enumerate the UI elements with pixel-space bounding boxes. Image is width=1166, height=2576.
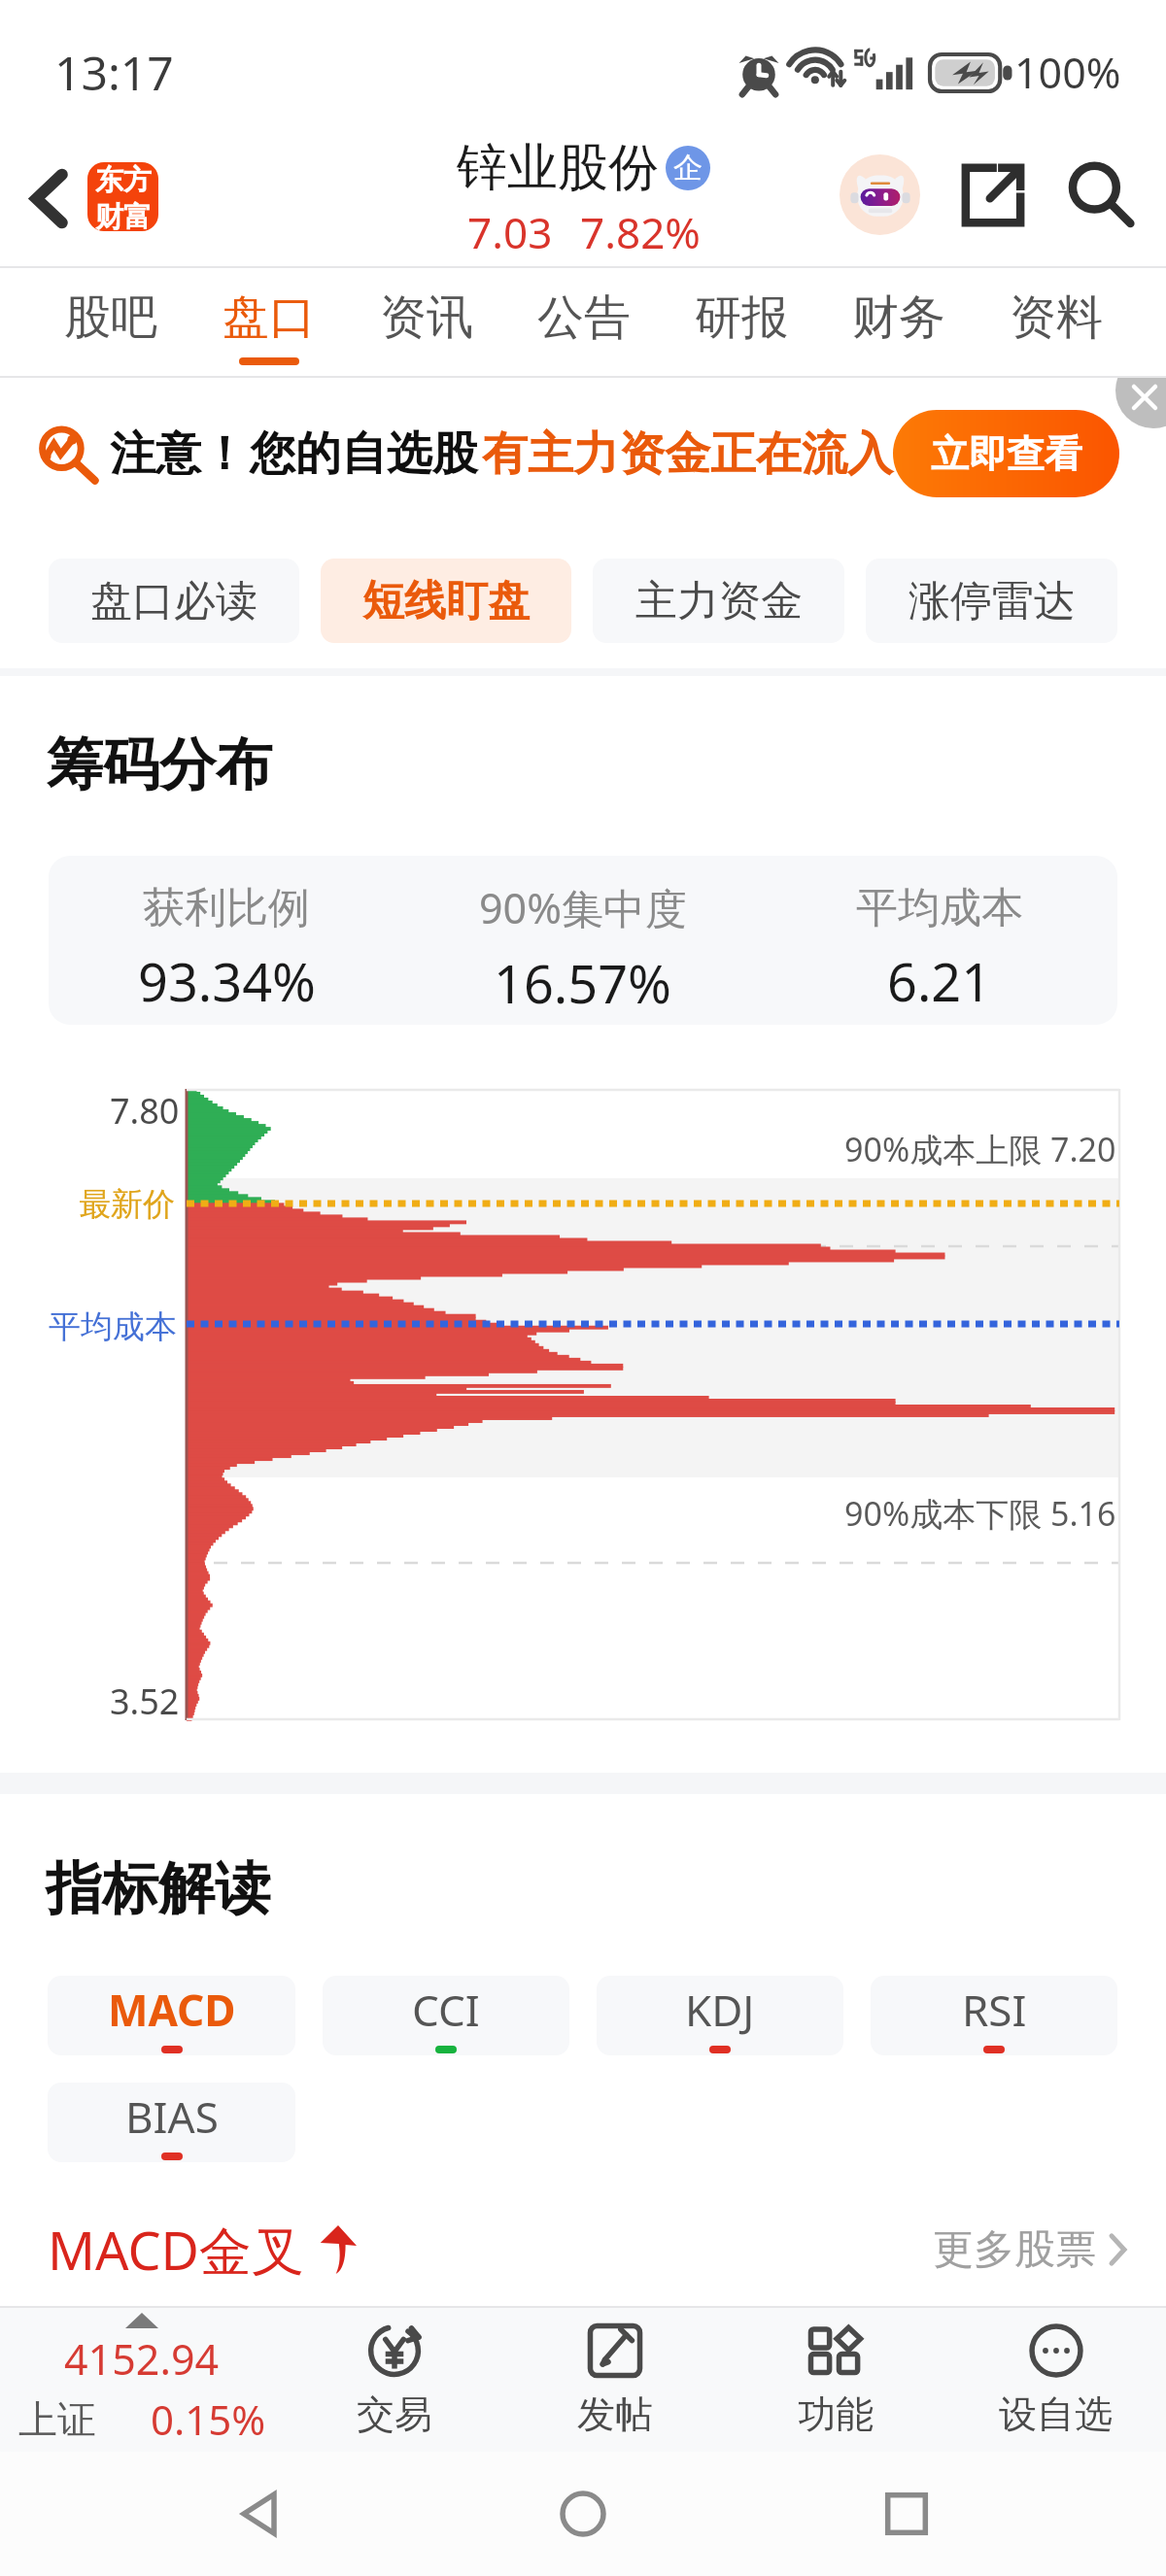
staticText: 7.82% — [580, 203, 701, 261]
staticText: 90%集中度 — [479, 879, 687, 936]
button[interactable]: 设自选 — [945, 2308, 1166, 2452]
button[interactable]: MACD金叉 — [48, 2203, 1127, 2296]
staticText: 发帖 — [577, 2390, 653, 2438]
button[interactable]: Close ad — [1115, 378, 1166, 428]
staticText: 主力资金 — [635, 575, 803, 627]
button[interactable]: RSI — [871, 1976, 1117, 2055]
staticText: RSI — [962, 1981, 1027, 2039]
staticText: 财务 — [852, 288, 945, 347]
staticText: 最新价 — [79, 1184, 175, 1225]
staticText: 6.21 — [887, 945, 992, 1017]
staticText: KDJ — [685, 1981, 755, 2039]
button[interactable]: CCI — [323, 1976, 569, 2055]
button[interactable]: 功能 — [725, 2308, 945, 2452]
staticText: 短线盯盘 — [362, 575, 530, 627]
staticText: 更多股票 — [933, 2224, 1096, 2276]
staticText: 财富 — [95, 199, 152, 231]
button[interactable]: 短线盯盘 — [321, 559, 571, 643]
staticText: 13:17 — [54, 41, 174, 104]
staticText: 筹码分布 — [47, 729, 272, 800]
staticText: 获利比例 — [143, 882, 310, 934]
button[interactable]: Home — [520, 2452, 646, 2576]
staticText: 7.80 — [110, 1087, 180, 1135]
staticText: 指标解读 — [46, 1853, 271, 1924]
button[interactable]: Back — [0, 142, 91, 253]
staticText: 设自选 — [999, 2390, 1113, 2438]
button[interactable]: 涨停雷达 — [866, 559, 1117, 643]
staticText: 交易 — [357, 2390, 432, 2438]
button[interactable]: 股吧 — [31, 267, 189, 377]
button[interactable]: 立即查看 — [893, 410, 1119, 497]
button[interactable]: MACD — [48, 1976, 295, 2055]
staticText: 功能 — [798, 2390, 874, 2438]
staticText: 公告 — [537, 288, 631, 347]
staticText: BIAS — [125, 2087, 219, 2146]
button[interactable]: BIAS — [48, 2083, 295, 2162]
button[interactable]: Back — [197, 2452, 324, 2576]
staticText: 资讯 — [380, 288, 473, 347]
button[interactable]: Search — [1054, 149, 1148, 242]
button[interactable]: KDJ — [597, 1976, 843, 2055]
staticText: 0.15% — [151, 2391, 266, 2447]
staticText: 4152.94 — [64, 2330, 220, 2388]
button[interactable]: 研报 — [663, 267, 820, 377]
staticText: MACD金叉 — [48, 2214, 304, 2286]
staticText: 16.57% — [494, 947, 671, 1019]
button[interactable]: 资料 — [977, 267, 1135, 377]
staticText: 注意！ — [110, 425, 247, 483]
button[interactable]: 发帖 — [504, 2308, 725, 2452]
staticText: 锌业股份 — [457, 136, 659, 200]
staticText: 股吧 — [64, 288, 157, 347]
staticText: 资料 — [1010, 288, 1103, 347]
staticText: 研报 — [695, 288, 788, 347]
staticText: 7.03 — [467, 203, 553, 261]
button[interactable]: East Money — [87, 162, 158, 231]
staticText: 盘口必读 — [90, 575, 257, 627]
staticText: 涨停雷达 — [909, 575, 1076, 627]
staticText: 企 — [673, 150, 703, 186]
button[interactable]: 公告 — [505, 267, 663, 377]
staticText: 您的自选股 — [250, 425, 478, 483]
staticText: CCI — [412, 1981, 480, 2039]
staticText: 立即查看 — [931, 430, 1082, 478]
staticText: 平均成本 — [49, 1306, 177, 1347]
button[interactable]: 交易 — [284, 2308, 504, 2452]
button[interactable]: 盘口必读 — [49, 559, 299, 643]
staticText: 100% — [1014, 44, 1121, 101]
button[interactable]: Recents — [843, 2452, 970, 2576]
staticText: 90%成本下限 5.16 — [844, 1491, 1116, 1536]
staticText: 有主力资金正在流入 — [482, 425, 893, 483]
staticText: 90%成本上限 7.20 — [844, 1127, 1116, 1171]
button[interactable]: 主力资金 — [593, 559, 844, 643]
button[interactable]: 盘口 — [189, 267, 348, 377]
staticText: 上证 — [18, 2395, 96, 2444]
button[interactable]: AI assistant — [833, 148, 926, 241]
staticText: 93.34% — [138, 945, 316, 1017]
button[interactable]: Share — [946, 149, 1040, 242]
staticText: MACD — [108, 1981, 236, 2039]
staticText: 3.52 — [110, 1678, 180, 1725]
button[interactable]: 财务 — [820, 267, 977, 377]
button[interactable]: 资讯 — [348, 267, 505, 377]
staticText: 平均成本 — [856, 882, 1023, 934]
staticText: 盘口 — [223, 288, 316, 347]
staticText: 东方 — [95, 162, 152, 198]
button[interactable]: 4152.94 — [0, 2308, 284, 2452]
